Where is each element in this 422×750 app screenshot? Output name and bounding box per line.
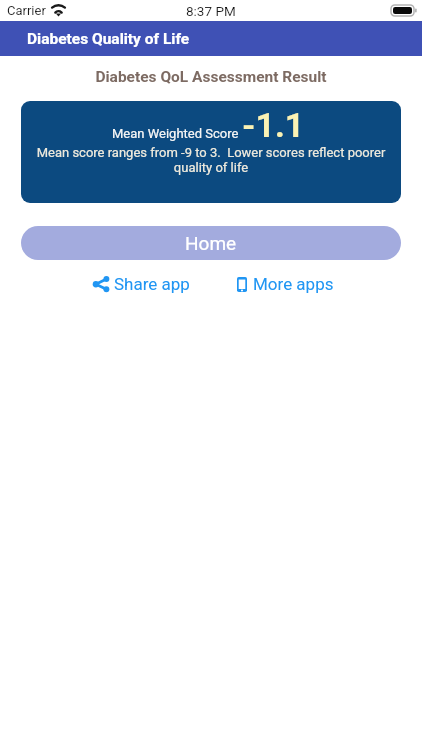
staticText: Carrier	[7, 3, 46, 18]
staticText: More apps	[253, 274, 334, 294]
staticText: Diabetes QoL Assessment Result	[0, 68, 422, 86]
staticText: Share app	[114, 274, 190, 294]
other: More apps	[237, 277, 247, 292]
staticText: Diabetes Quality of Life	[27, 30, 190, 48]
button[interactable]: More apps	[235, 271, 336, 297]
staticText: Mean Weighted Score	[112, 126, 239, 141]
staticText: Home	[185, 232, 237, 254]
button[interactable]: Share app	[90, 271, 192, 297]
other: Share app	[92, 276, 110, 292]
button[interactable]: Home	[21, 226, 401, 260]
staticText: Mean score ranges from -9 to 3. Lower sc…	[28, 145, 394, 175]
staticText: 8:37 PM	[186, 3, 236, 19]
staticText: -1.1	[242, 105, 305, 145]
